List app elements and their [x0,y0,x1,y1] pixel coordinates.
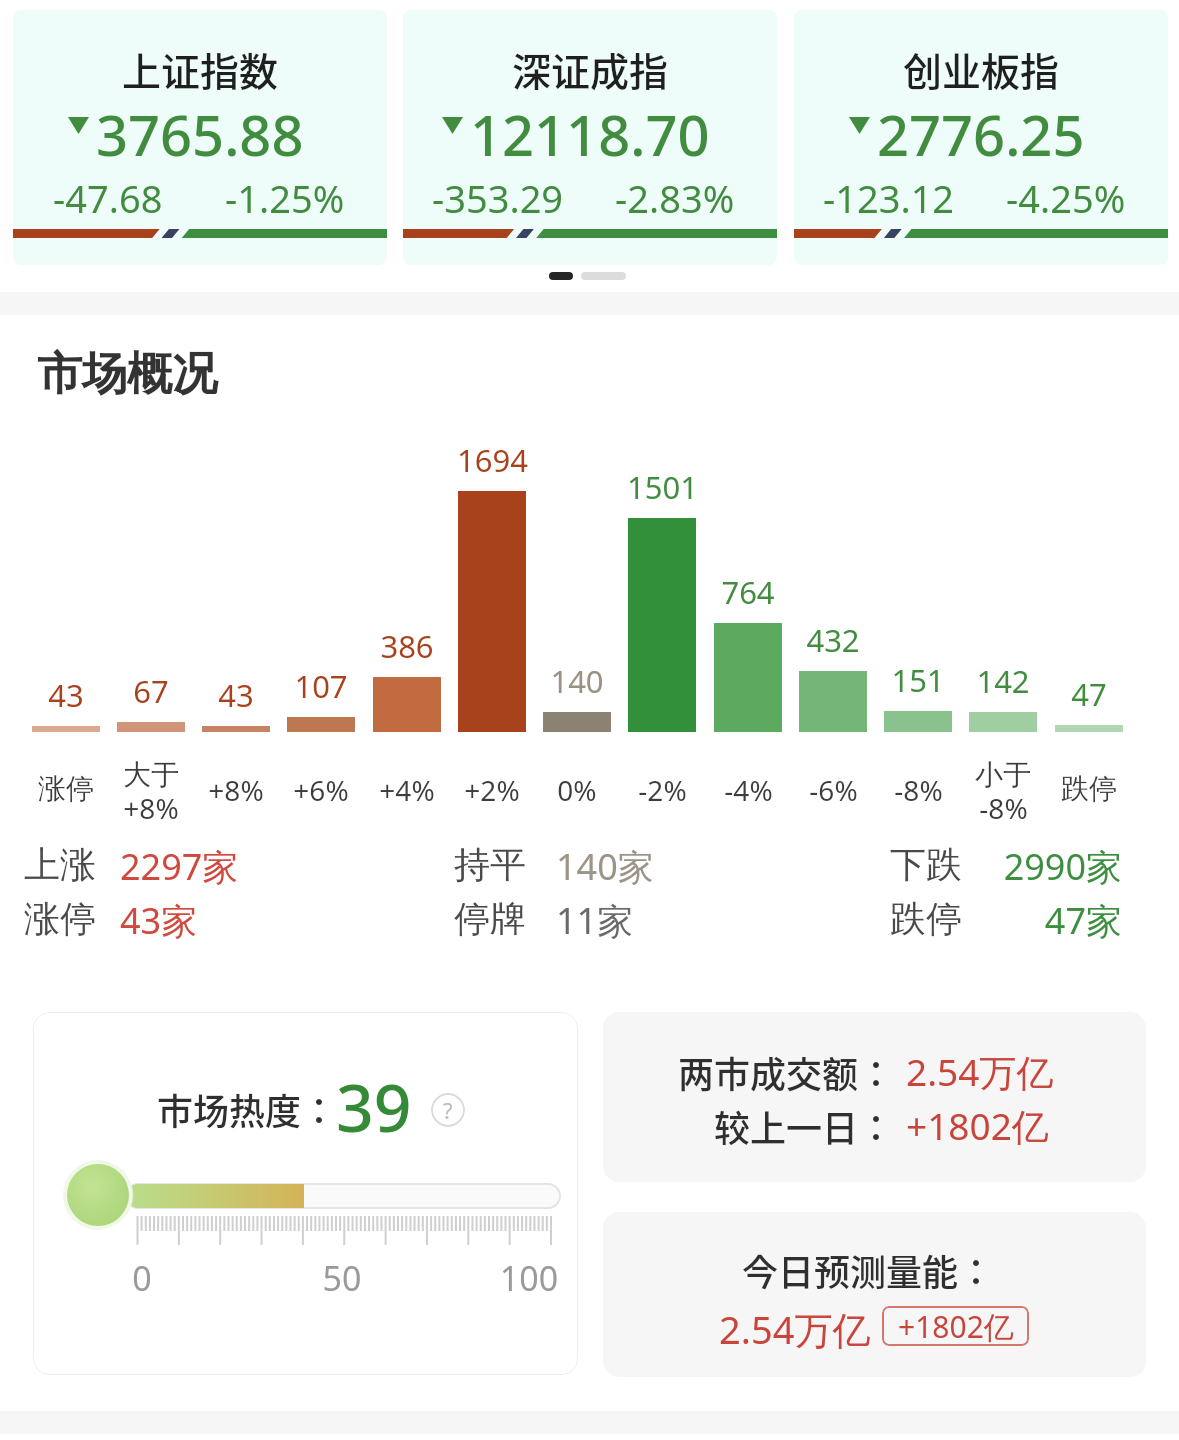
staticText: 47 [1071,673,1107,715]
staticText: 47家 [962,896,1122,945]
staticText: +8% [123,789,179,827]
button[interactable]: 创业板指 [794,10,1168,265]
staticText: 较上一日： [603,1100,894,1152]
staticText: -4.25% [1006,172,1126,224]
staticText: 市场热度： [157,1083,338,1135]
staticText: -4% [724,771,773,809]
staticText: 2776.25 [877,96,1085,172]
button[interactable]: 两市成交额： [603,1012,1146,1182]
staticText: ? [443,1095,453,1125]
staticText: -1.25% [225,172,345,224]
staticText: 432 [806,619,860,661]
staticText: 1694 [457,439,528,481]
staticText: 140 [550,660,604,702]
staticText: 上证指数 [122,41,279,97]
staticText: 764 [721,571,775,613]
staticText: 386 [380,625,434,667]
staticText: 12118.70 [470,96,710,172]
staticText: -2.83% [615,172,735,224]
staticText: 涨停 [24,896,96,941]
staticText: 下跌 [890,842,962,887]
staticText: 3765.88 [96,96,304,172]
staticText: 两市成交额： [603,1046,894,1098]
staticText: 上涨 [24,842,96,887]
staticText: 100 [489,1255,569,1301]
staticText: -2% [638,771,687,809]
staticText: 43 [218,674,254,716]
staticText: 107 [294,665,348,707]
staticText: 深证成指 [512,41,669,97]
staticText: 跌停 [890,896,962,941]
staticText: 151 [891,659,945,701]
staticText: 2.54万亿 [906,1046,1054,1097]
staticText: 142 [976,660,1030,702]
staticText: 140家 [556,842,654,891]
staticText: -8% [894,771,943,809]
staticText: +6% [293,771,349,809]
button[interactable]: 市场热度： [33,1012,578,1375]
staticText: 39 [336,1061,412,1151]
staticText: 50 [302,1255,382,1301]
staticText: 1501 [627,466,698,508]
staticText: 2990家 [962,842,1122,891]
staticText: 11家 [556,896,634,945]
staticText: +1802亿 [898,1306,1014,1346]
staticText: 涨停 [38,771,94,806]
staticText: 今日预测量能： [718,1244,1018,1296]
staticText: 43 [48,674,84,716]
staticText: -6% [809,771,858,809]
staticText: 持平 [454,842,526,887]
staticText: -353.29 [432,172,564,224]
staticText: 市场概况 [37,346,217,403]
staticText: 67 [133,670,169,712]
staticText: +2% [464,771,520,809]
staticText: 小于 [975,757,1031,792]
staticText: 停牌 [454,896,526,941]
staticText: -47.68 [53,172,163,224]
staticText: +1802亿 [906,1100,1049,1151]
staticText: 大于 [123,757,179,792]
staticText: 2297家 [120,842,239,891]
staticText: 创业板指 [903,41,1060,97]
staticText: +8% [208,771,264,809]
staticText: 43家 [120,896,198,945]
staticText: -123.12 [823,172,955,224]
staticText: 2.54万亿 [719,1303,871,1355]
staticText: 0 [102,1255,182,1301]
button[interactable]: 上证指数 [13,10,387,265]
button[interactable]: 深证成指 [403,10,777,265]
staticText: -8% [979,789,1028,827]
button[interactable]: 今日预测量能： [603,1212,1146,1377]
staticText: 跌停 [1061,771,1117,806]
staticText: +4% [379,771,435,809]
staticText: 0% [557,771,597,809]
